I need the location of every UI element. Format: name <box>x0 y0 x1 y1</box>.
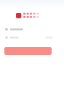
button[interactable] <box>4 47 52 55</box>
